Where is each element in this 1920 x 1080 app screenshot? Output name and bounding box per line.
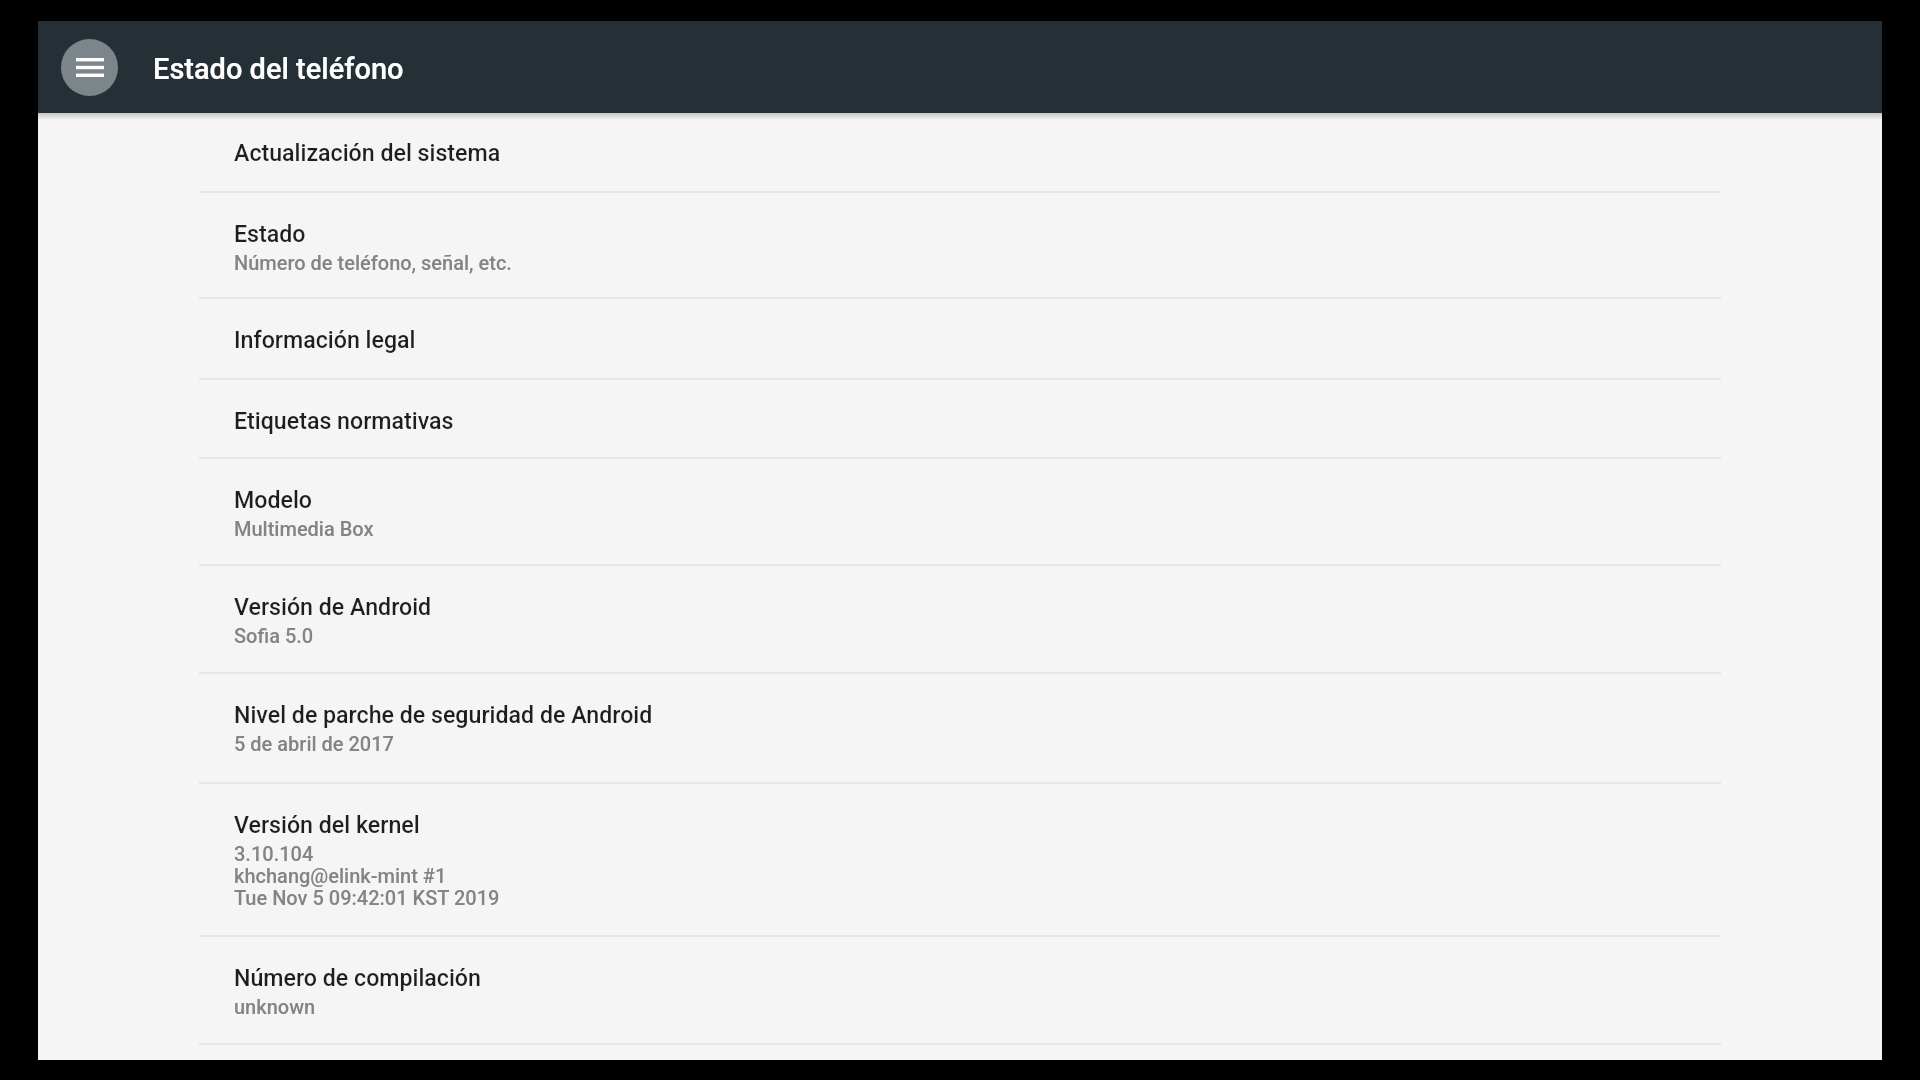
staticText: Estado del teléfono <box>153 52 404 86</box>
staticText: Información legal <box>234 326 416 353</box>
staticText: Nivel de parche de seguridad de Android <box>234 701 653 728</box>
staticText: Sofia 5.0 <box>234 624 314 647</box>
staticText: Multimedia Box <box>234 517 374 540</box>
button[interactable]: Estado <box>199 191 1721 297</box>
button[interactable]: Actualización del sistema <box>199 113 1721 191</box>
button[interactable]: Versión de Android <box>199 564 1721 672</box>
staticText: Etiquetas normativas <box>234 407 454 434</box>
staticText: Modelo <box>234 486 312 513</box>
staticText: Actualización del sistema <box>234 139 501 166</box>
staticText: Número de teléfono, señal, etc. <box>234 251 512 274</box>
staticText: Versión del kernel <box>234 811 420 838</box>
button[interactable]: Número de compilación <box>199 935 1721 1043</box>
staticText: Número de compilación <box>234 964 481 991</box>
button[interactable]: Modelo <box>199 457 1721 564</box>
staticText: Estado <box>234 220 306 247</box>
button[interactable]: Versión del kernel <box>199 782 1721 935</box>
button[interactable]: Open navigation menu <box>61 39 118 96</box>
staticText: unknown <box>234 995 316 1018</box>
staticText: 3.10.104 khchang@elink-mint #1 Tue Nov 5… <box>234 842 500 910</box>
button[interactable]: Nivel de parche de seguridad de Android <box>199 672 1721 782</box>
staticText: 5 de abril de 2017 <box>234 732 394 755</box>
button[interactable]: Etiquetas normativas <box>199 378 1721 457</box>
staticText: Versión de Android <box>234 593 432 620</box>
button[interactable]: Información legal <box>199 297 1721 378</box>
